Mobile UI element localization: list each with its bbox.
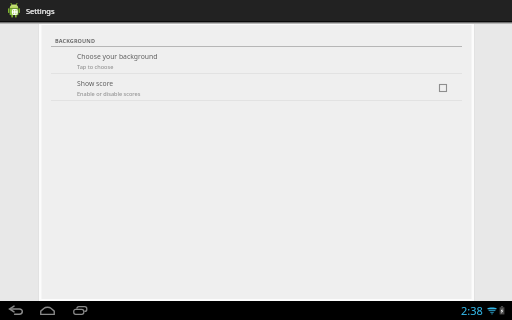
staticText: Settings bbox=[26, 6, 55, 16]
staticText: Show score bbox=[77, 79, 114, 88]
staticText: BACKGROUND bbox=[55, 37, 96, 44]
button[interactable]: Show score bbox=[42, 74, 471, 100]
staticText: Tap to choose bbox=[77, 63, 114, 71]
button[interactable]: Back bbox=[9, 305, 23, 316]
button[interactable]: Choose your background bbox=[42, 47, 471, 73]
button[interactable]: Recent apps bbox=[73, 306, 88, 315]
button[interactable]: Show score toggle bbox=[415, 74, 471, 100]
staticText: 2:38 bbox=[461, 303, 483, 318]
staticText: Choose your background bbox=[77, 52, 158, 61]
button[interactable]: Home bbox=[40, 306, 55, 315]
staticText: Enable or disable scores bbox=[77, 90, 141, 98]
other: Wi-Fi bbox=[487, 306, 497, 315]
